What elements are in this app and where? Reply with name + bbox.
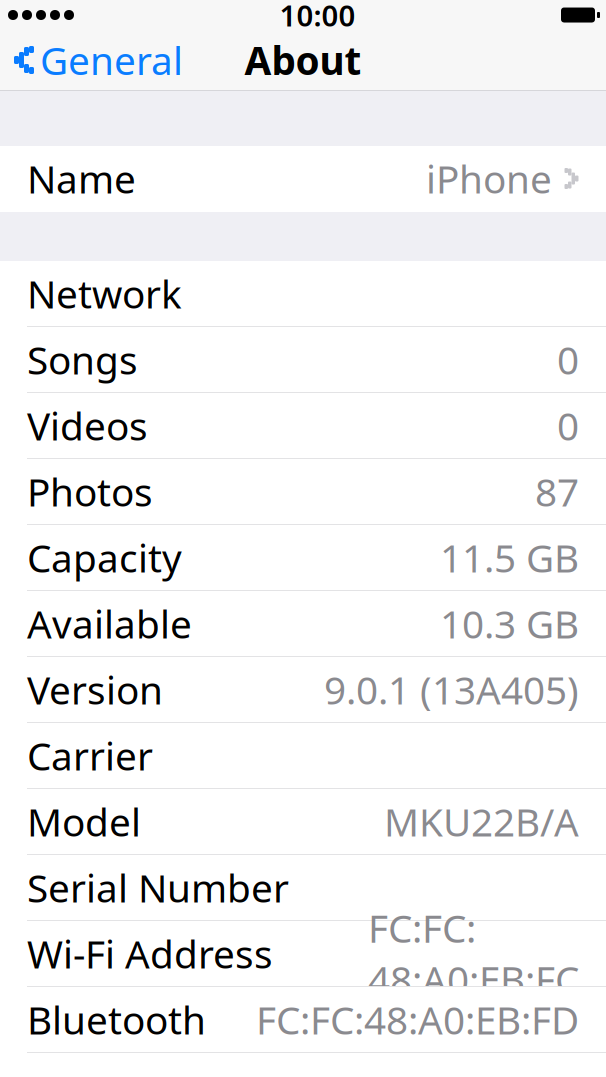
button[interactable]: Songs	[0, 327, 606, 393]
button[interactable]: Network	[0, 261, 606, 327]
staticText: Serial Number	[27, 862, 289, 913]
staticText: General	[40, 34, 183, 86]
button[interactable]: Photos	[0, 459, 606, 525]
staticText: Songs	[27, 334, 138, 385]
button[interactable]: Model	[0, 789, 606, 855]
button[interactable]: Serial Number	[0, 855, 606, 921]
staticText: 11.5 GB	[440, 532, 579, 583]
staticText: Videos	[27, 400, 148, 451]
button[interactable]: Bluetooth	[0, 987, 606, 1053]
button[interactable]: Wi-Fi Address	[0, 921, 606, 987]
staticText: FC:FC:48:A0:EB:FC	[368, 902, 579, 1005]
staticText: Network	[27, 268, 182, 319]
button[interactable]: Carrier	[0, 723, 606, 789]
staticText: Bluetooth	[27, 994, 206, 1045]
staticText: FC:FC:48:A0:EB:FD	[256, 994, 579, 1045]
staticText: Model	[27, 796, 141, 847]
button[interactable]: Videos	[0, 393, 606, 459]
staticText: Photos	[27, 466, 153, 517]
staticText: 9.0.1 (13A405)	[324, 664, 579, 715]
staticText: iPhone	[426, 153, 552, 204]
button[interactable]: Name	[0, 146, 606, 212]
staticText: Name	[27, 153, 136, 204]
staticText: 87	[535, 466, 579, 517]
button[interactable]: General	[0, 28, 193, 92]
button[interactable]: Version	[0, 657, 606, 723]
staticText: 0	[557, 334, 579, 385]
staticText: Version	[27, 664, 163, 715]
staticText: About	[244, 34, 361, 86]
staticText: Capacity	[27, 532, 182, 583]
staticText: 10:00	[279, 0, 355, 34]
staticText: Carrier	[27, 730, 153, 781]
staticText: Available	[27, 598, 192, 649]
button[interactable]: Capacity	[0, 525, 606, 591]
staticText: Wi-Fi Address	[27, 928, 273, 979]
staticText: 0	[557, 400, 579, 451]
staticText: MKU22B/A	[384, 796, 579, 847]
staticText: 10.3 GB	[440, 598, 579, 649]
button[interactable]: Available	[0, 591, 606, 657]
